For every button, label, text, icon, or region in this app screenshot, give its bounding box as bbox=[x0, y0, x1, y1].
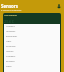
button[interactable]: Light bbox=[4, 39, 60, 44]
button[interactable]: Humidity bbox=[4, 29, 60, 34]
button[interactable]: Proximity bbox=[4, 44, 60, 49]
staticText: Rotation bbox=[6, 60, 15, 63]
staticText: Steps bbox=[6, 65, 12, 68]
button[interactable]: Compass bbox=[4, 54, 60, 59]
staticText: Ambient bbox=[6, 25, 15, 28]
button[interactable]: Steps bbox=[4, 64, 60, 69]
staticText: 8 sensors available bbox=[1, 9, 22, 12]
staticText: Light bbox=[6, 40, 12, 43]
button[interactable]: Live readings bbox=[3, 13, 61, 24]
staticText: Compass bbox=[6, 55, 16, 58]
button[interactable]: Motion bbox=[4, 49, 60, 54]
staticText: Proximity bbox=[6, 45, 16, 48]
staticText: Live readings bbox=[4, 14, 18, 17]
staticText: Sensors bbox=[1, 3, 19, 9]
button[interactable]: Rotation bbox=[4, 59, 60, 64]
button[interactable]: Ambient bbox=[4, 24, 60, 29]
staticText: Humidity bbox=[6, 30, 16, 33]
staticText: Barometer bbox=[6, 35, 18, 38]
staticText: Motion bbox=[6, 50, 14, 53]
button[interactable]: Account bbox=[56, 3, 61, 8]
button[interactable]: Barometer bbox=[4, 34, 60, 39]
staticText: 23.4 C bbox=[4, 19, 14, 24]
